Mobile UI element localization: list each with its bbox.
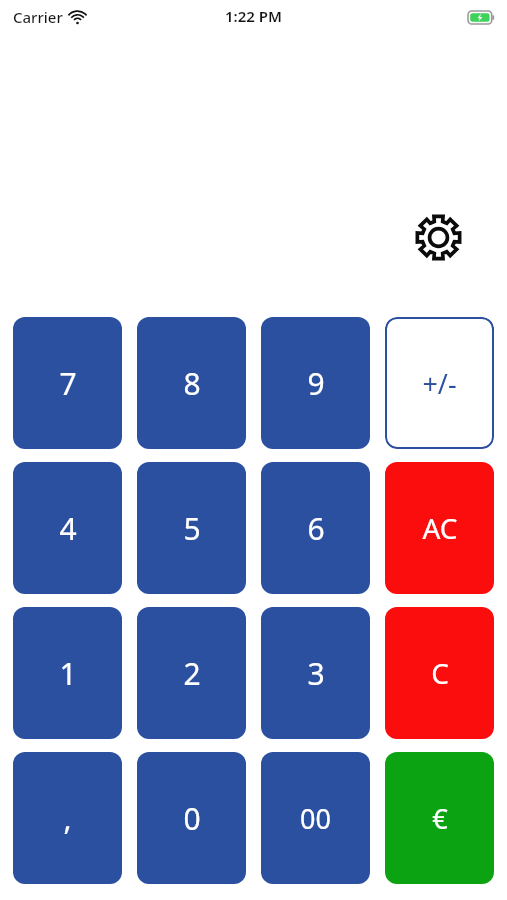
staticText: 9 [307,363,325,404]
staticText: 1:22 PM [225,6,282,26]
staticText: 4 [59,508,77,549]
button[interactable]: , [13,752,122,884]
staticText: 3 [307,653,325,694]
button[interactable]: € [385,752,494,884]
staticText: Carrier [13,7,63,27]
staticText: € [432,800,448,837]
button[interactable]: AC [385,462,494,594]
staticText: 6 [307,508,325,549]
button[interactable]: 7 [13,317,122,449]
staticText: 7 [59,363,77,404]
button[interactable]: 2 [137,607,246,739]
staticText: , [63,798,72,839]
button[interactable]: C [385,607,494,739]
staticText: 00 [300,800,331,837]
staticText: AC [422,509,458,547]
button[interactable]: 00 [261,752,370,884]
button[interactable]: 8 [137,317,246,449]
staticText: 5 [183,508,201,549]
staticText: C [431,654,449,692]
staticText: 8 [183,363,201,404]
button[interactable]: Settings [413,212,464,263]
staticText: 1 [59,653,77,694]
button[interactable]: +/- [385,317,494,449]
button[interactable]: 1 [13,607,122,739]
button[interactable]: 0 [137,752,246,884]
button[interactable]: 5 [137,462,246,594]
staticText: 0 [183,798,201,839]
staticText: +/- [422,365,457,402]
button[interactable]: 6 [261,462,370,594]
button[interactable]: 4 [13,462,122,594]
staticText: 2 [183,653,201,694]
button[interactable]: 3 [261,607,370,739]
button[interactable]: 9 [261,317,370,449]
